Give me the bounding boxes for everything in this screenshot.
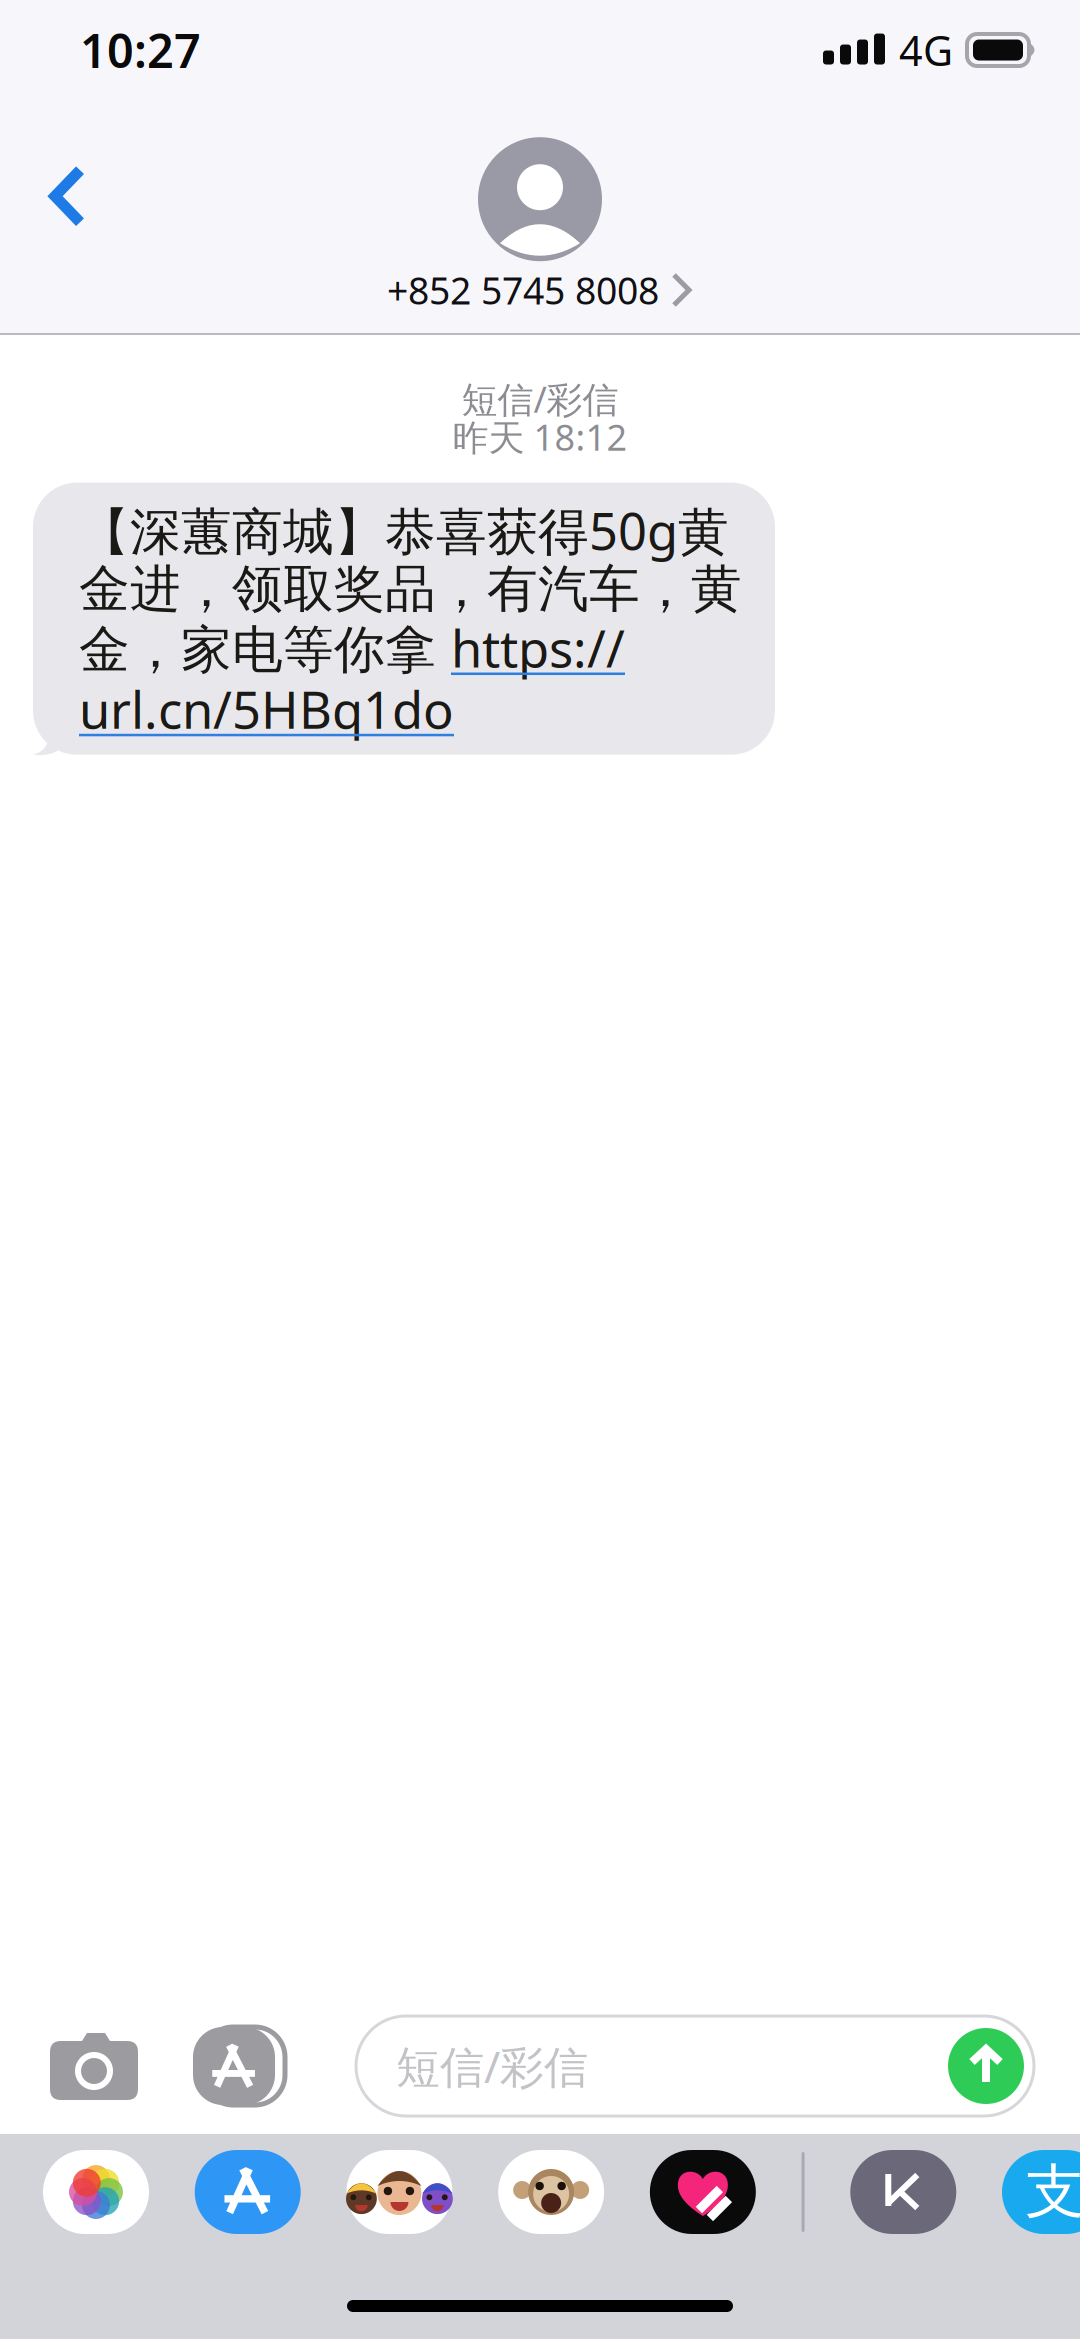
staticText: 支 [1025, 2156, 1080, 2228]
staticText: 短信/彩信 [461, 375, 618, 423]
button[interactable]: App Store [195, 2150, 301, 2234]
staticText: 【深蕙商城】恭喜获得50g黄金进，领取奖品，有汽车，黄金，家电等你拿 https… [79, 497, 742, 743]
button[interactable]: Alipay [1002, 2150, 1080, 2234]
button[interactable]: +852 5745 8008 [387, 118, 693, 315]
button[interactable]: Send [948, 2028, 1024, 2104]
button[interactable]: Back [22, 136, 114, 256]
staticText: 短信/彩信 [396, 2037, 588, 2095]
button[interactable]: Memoji [346, 2150, 452, 2234]
staticText: +852 5745 8008 [387, 265, 659, 315]
button[interactable]: Keep [850, 2150, 956, 2234]
button[interactable]: Health [650, 2150, 756, 2234]
button[interactable]: Apps [170, 2006, 298, 2126]
button[interactable]: Photos [43, 2150, 149, 2234]
staticText: 10:27 [80, 19, 201, 81]
staticText: 昨天 18:12 [452, 413, 627, 461]
staticText: 4G [899, 23, 953, 77]
button[interactable]: Camera [18, 2006, 170, 2126]
button[interactable]: Animoji [498, 2150, 604, 2234]
